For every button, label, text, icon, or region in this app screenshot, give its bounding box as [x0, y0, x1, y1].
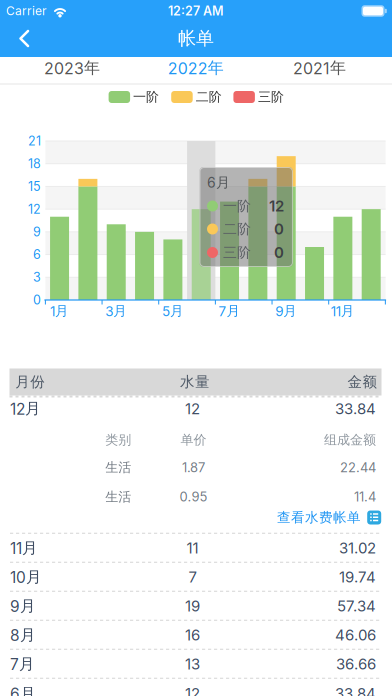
staticText: 0: [274, 220, 284, 238]
staticText: 11月: [331, 302, 355, 319]
staticText: 生活: [105, 489, 131, 505]
staticText: 水量: [180, 373, 210, 391]
button[interactable]: 2023年: [11, 55, 134, 81]
staticText: 组成金额: [324, 432, 376, 448]
staticText: 15: [28, 179, 41, 194]
staticText: 7月: [10, 654, 35, 674]
staticText: 三阶: [223, 244, 251, 261]
button[interactable]: 9月: [0, 591, 392, 620]
staticText: 12: [185, 684, 200, 696]
staticText: 月份: [15, 373, 45, 391]
staticText: 36.66: [336, 655, 376, 673]
button[interactable]: 10月: [0, 562, 392, 591]
staticText: 33.84: [335, 684, 376, 696]
staticText: 8月: [10, 625, 36, 645]
staticText: 生活: [105, 459, 131, 476]
staticText: 11: [186, 539, 198, 557]
staticText: 33.84: [335, 400, 376, 418]
staticText: 12月: [10, 399, 41, 418]
staticText: 9: [33, 224, 41, 239]
button[interactable]: 6月: [0, 679, 392, 696]
staticText: 31.02: [339, 539, 376, 557]
staticText: 12: [185, 400, 200, 418]
staticText: 6月: [10, 684, 36, 696]
staticText: 12:27 AM: [168, 3, 224, 18]
button[interactable]: 2021年: [258, 55, 381, 81]
button[interactable]: 2022年: [134, 55, 257, 81]
staticText: 一阶: [133, 89, 159, 105]
staticText: 一阶: [223, 197, 251, 215]
staticText: 10月: [10, 567, 42, 587]
staticText: 1月: [50, 302, 69, 319]
staticText: 2023年: [44, 58, 100, 78]
staticText: 二阶: [196, 89, 222, 105]
staticText: 单价: [180, 432, 206, 448]
staticText: 2021年: [293, 58, 346, 78]
staticText: 二阶: [223, 220, 251, 238]
staticText: 46.06: [335, 626, 376, 644]
staticText: 三阶: [258, 89, 284, 105]
staticText: 7月: [218, 302, 240, 319]
staticText: 类别: [105, 432, 131, 448]
staticText: 13: [185, 655, 200, 673]
staticText: 12: [269, 197, 284, 215]
button[interactable]: 7月: [0, 649, 392, 678]
button[interactable]: 一阶: [109, 88, 159, 106]
staticText: 19: [185, 597, 200, 615]
staticText: 22.44: [340, 460, 376, 475]
staticText: 11月: [10, 538, 38, 558]
staticText: 0: [274, 243, 284, 261]
staticText: Carrier: [6, 4, 47, 18]
staticText: 6月: [207, 174, 230, 191]
staticText: 16: [185, 626, 200, 644]
staticText: 3: [33, 270, 41, 285]
button[interactable]: 查看水费帐单: [0, 504, 392, 530]
staticText: 0: [33, 292, 41, 307]
button[interactable]: 12月: [0, 394, 392, 423]
staticText: 9月: [10, 596, 36, 616]
staticText: 1.87: [182, 460, 205, 475]
button[interactable]: 二阶: [171, 88, 221, 106]
staticText: 18: [28, 156, 41, 171]
button[interactable]: 三阶: [233, 88, 283, 106]
staticText: 12: [28, 202, 41, 217]
button[interactable]: [2, 16, 46, 60]
staticText: 9月: [275, 302, 297, 319]
staticText: 帐单: [178, 27, 214, 50]
staticText: 0.95: [179, 489, 207, 505]
staticText: 7: [188, 568, 196, 586]
button[interactable]: 11月: [0, 533, 392, 562]
staticText: 2022年: [168, 58, 224, 78]
staticText: 6: [33, 247, 41, 262]
staticText: 21: [28, 133, 41, 148]
staticText: 5月: [162, 302, 184, 319]
staticText: 3月: [105, 302, 127, 319]
staticText: 查看水费帐单: [277, 509, 361, 526]
staticText: 19.74: [339, 568, 376, 586]
button[interactable]: 8月: [0, 620, 392, 649]
staticText: 金额: [347, 373, 377, 391]
staticText: 11.4: [354, 489, 376, 505]
staticText: 57.34: [337, 597, 376, 615]
